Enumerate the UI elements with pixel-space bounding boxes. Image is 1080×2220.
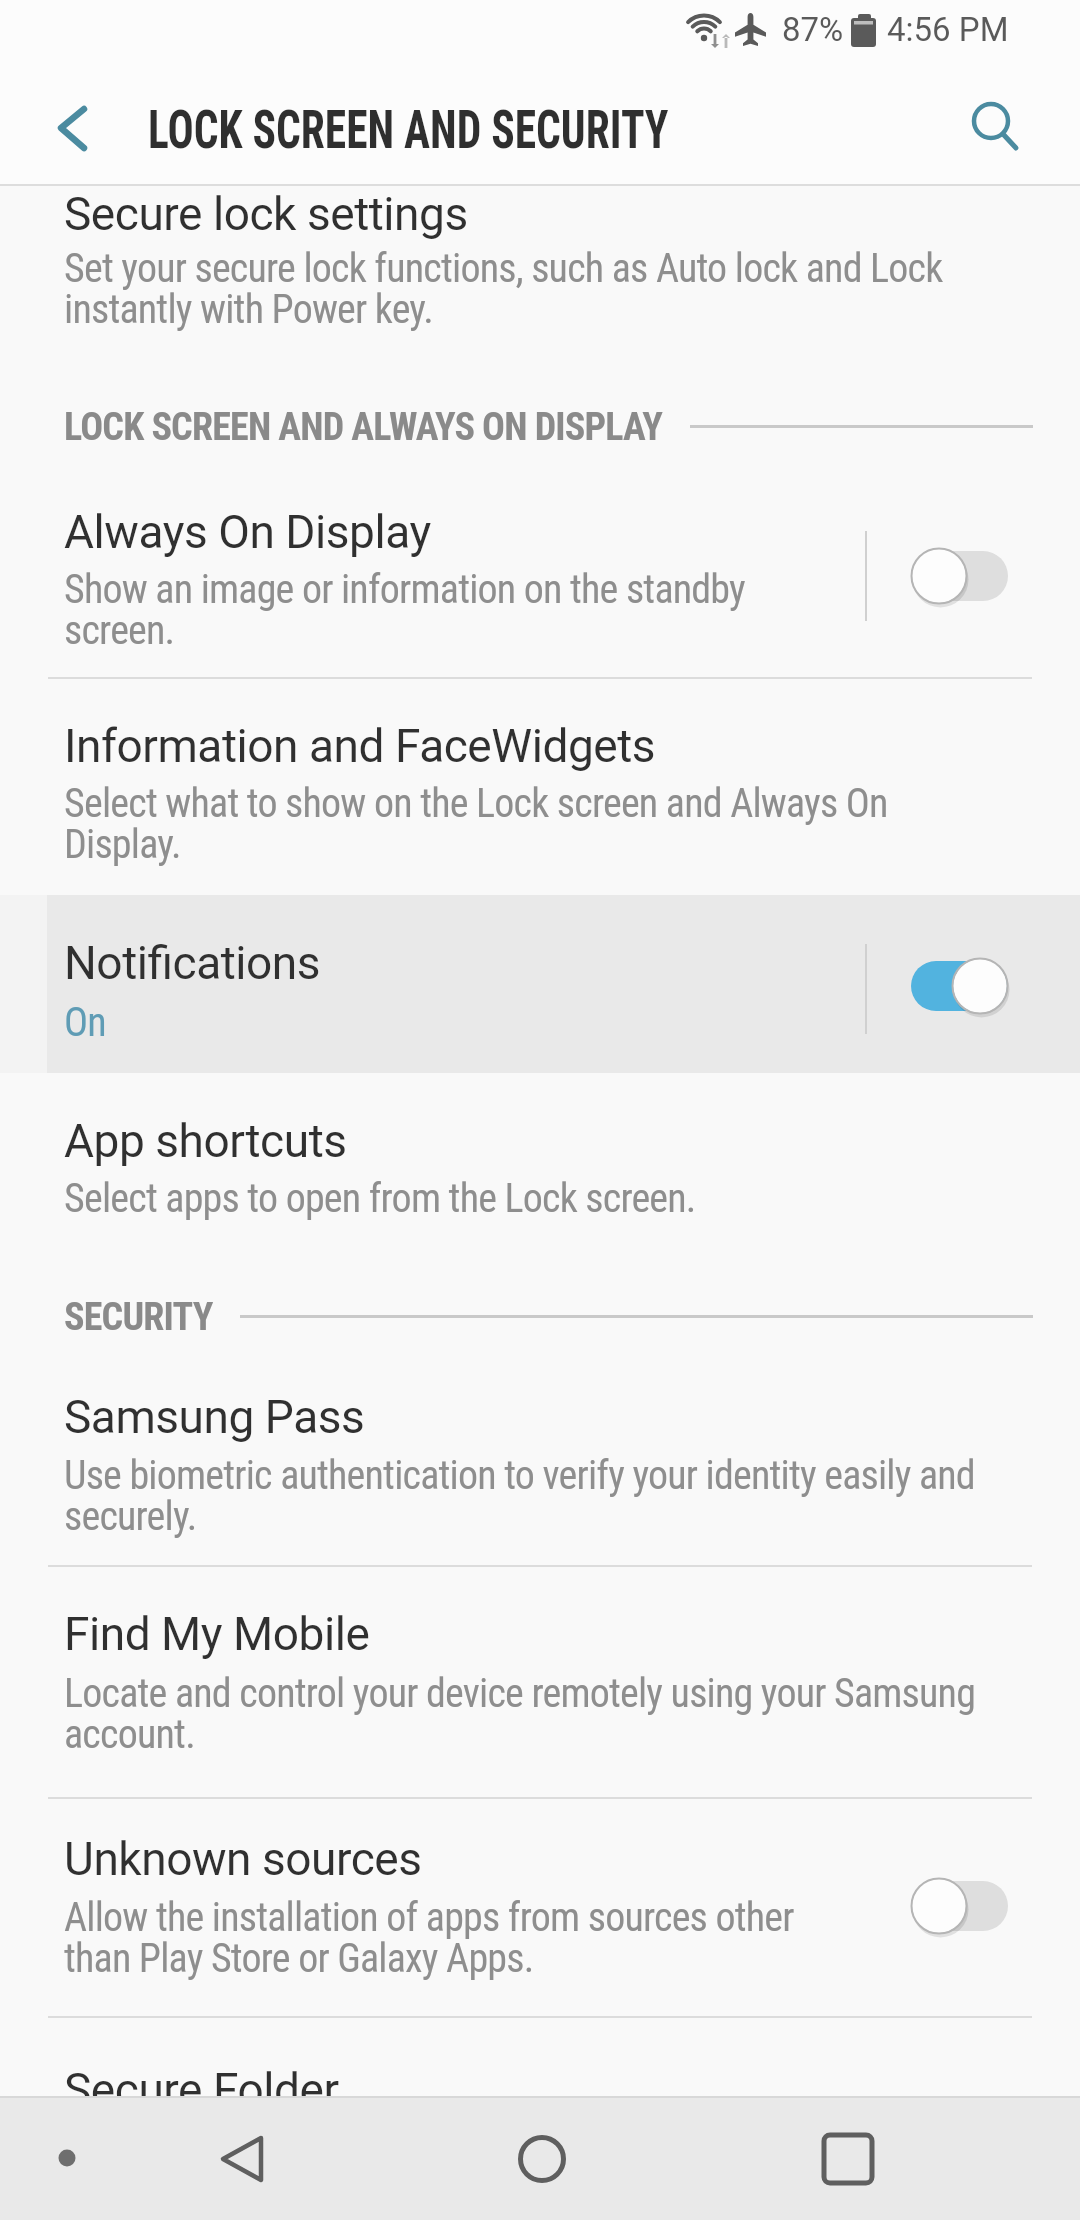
staticText: Secure Folder [64, 2063, 339, 2117]
button[interactable] [0, 679, 1080, 895]
button[interactable] [0, 1567, 1080, 1797]
staticText: On [64, 999, 106, 1046]
button[interactable] [891, 941, 1028, 1031]
button[interactable] [808, 2119, 888, 2199]
button[interactable] [47, 2138, 87, 2178]
staticText: Use biometric authentication to verify y… [64, 1452, 975, 1499]
staticText: account. [64, 1711, 195, 1758]
staticText: Always On Display [64, 505, 431, 559]
staticText: Samsung Pass [64, 1390, 365, 1444]
staticText: Secure lock settings [64, 187, 468, 241]
button[interactable] [0, 1370, 1080, 1565]
staticText: SECURITY [64, 1295, 213, 1340]
staticText: Select what to show on the Lock screen a… [64, 780, 888, 827]
staticText: securely. [64, 1493, 197, 1540]
button[interactable] [202, 2119, 282, 2199]
button[interactable] [0, 480, 1080, 678]
staticText: than Play Store or Galaxy Apps. [64, 1935, 534, 1982]
staticText: Allow the installation of apps from sour… [64, 1894, 794, 1941]
button[interactable] [0, 186, 1080, 366]
staticText: 87% [782, 10, 844, 49]
button[interactable] [502, 2119, 582, 2199]
button[interactable] [0, 1799, 1080, 2009]
button[interactable] [0, 895, 1080, 1073]
button[interactable] [40, 95, 106, 161]
staticText: Show an image or information on the stan… [64, 566, 745, 613]
staticText: Information and FaceWidgets [64, 719, 656, 773]
staticText: instantly with Power key. [64, 286, 433, 333]
staticText: LOCK SCREEN AND ALWAYS ON DISPLAY [64, 405, 663, 450]
staticText: Unknown sources [64, 1832, 422, 1886]
staticText: 4:56 PM [887, 10, 1009, 49]
button[interactable] [891, 1861, 1028, 1951]
button[interactable] [958, 88, 1034, 164]
staticText: Set your secure lock functions, such as … [64, 245, 943, 292]
staticText: LOCK SCREEN AND SECURITY [148, 99, 669, 161]
staticText: App shortcuts [64, 1114, 347, 1168]
staticText: Locate and control your device remotely … [64, 1670, 976, 1717]
button[interactable] [0, 1075, 1080, 1250]
button[interactable] [891, 531, 1028, 621]
staticText: Notifications [64, 936, 321, 990]
staticText: Find My Mobile [64, 1607, 370, 1661]
staticText: screen. [64, 607, 175, 654]
staticText: Display. [64, 821, 181, 868]
staticText: Select apps to open from the Lock screen… [64, 1175, 696, 1222]
button[interactable] [0, 2018, 1080, 2107]
